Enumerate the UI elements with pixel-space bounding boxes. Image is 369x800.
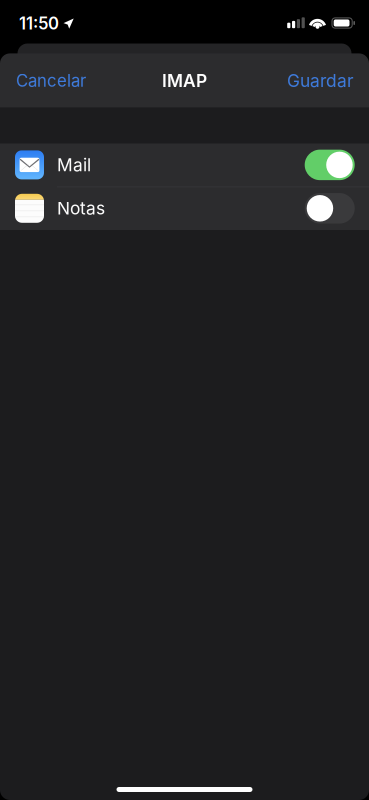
staticText: 11:50: [19, 13, 59, 34]
staticText: Notas: [57, 198, 105, 219]
button[interactable]: Cancelar: [0, 53, 98, 108]
button[interactable]: Notas: [0, 187, 369, 230]
staticText: Cancelar: [16, 70, 86, 91]
button[interactable]: Mail: [0, 143, 369, 187]
staticText: Mail: [57, 154, 91, 175]
staticText: IMAP: [162, 70, 207, 91]
button[interactable]: Guardar: [275, 53, 369, 108]
staticText: Guardar: [287, 70, 354, 91]
